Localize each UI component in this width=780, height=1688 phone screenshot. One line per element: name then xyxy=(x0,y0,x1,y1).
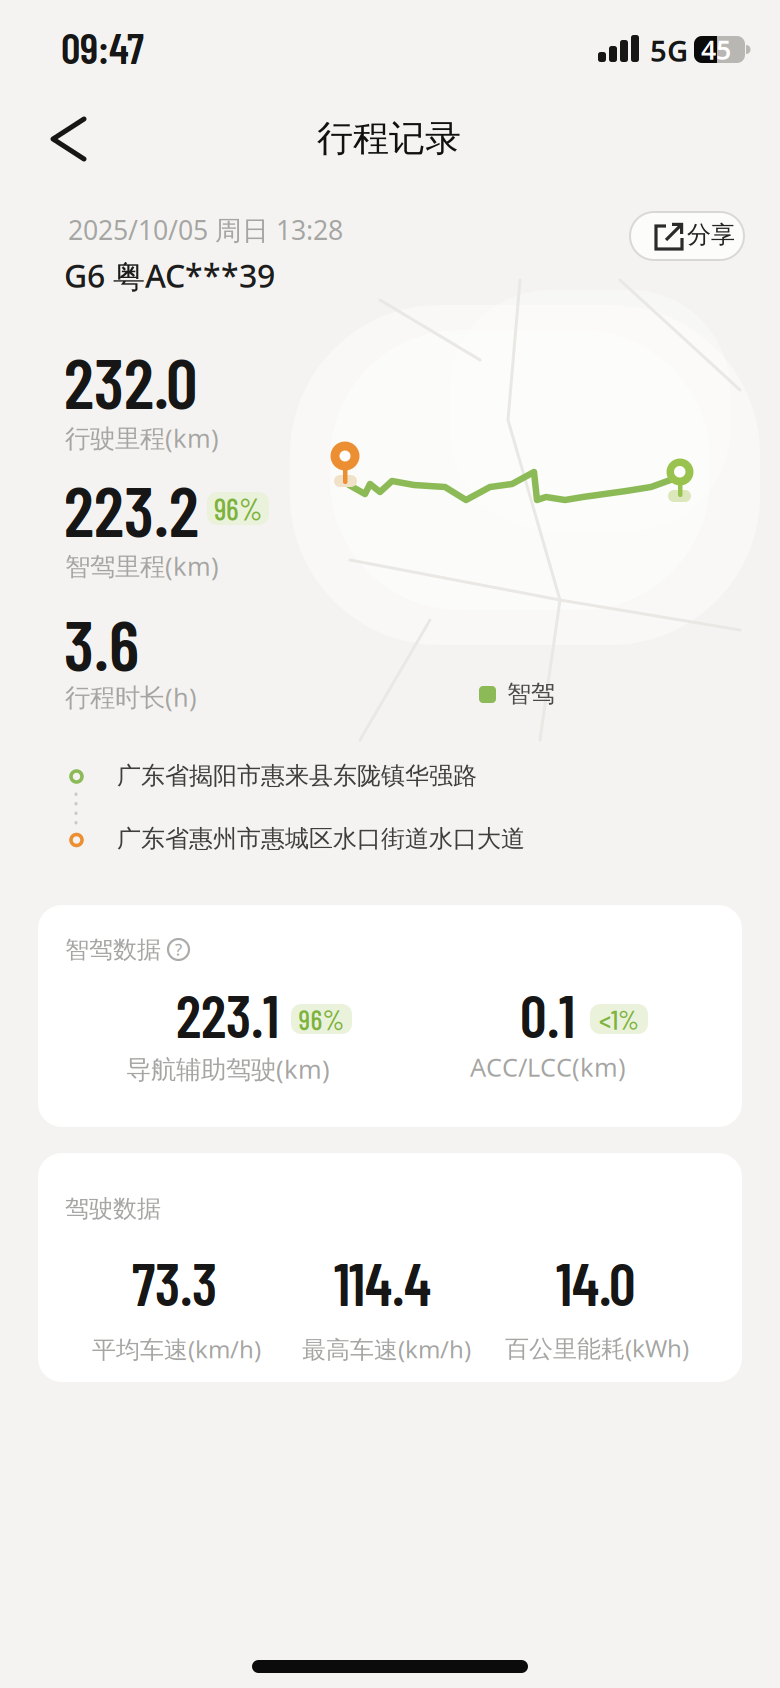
staticText: 智驾 xyxy=(507,679,555,708)
staticText: 百公里能耗(kWh) xyxy=(505,1332,689,1364)
staticText: 广东省惠州市惠城区水口街道水口大道 xyxy=(117,824,525,853)
staticText: 232.0 xyxy=(64,339,198,423)
staticText: 行程记录 xyxy=(317,116,461,161)
staticText: G6 粤AC***39 xyxy=(64,254,275,297)
staticText: 3.6 xyxy=(64,601,139,685)
staticText: ? xyxy=(175,939,182,960)
staticText: 114.4 xyxy=(334,1247,431,1318)
staticText: 行驶里程(km) xyxy=(65,421,219,455)
staticText: 96% xyxy=(214,490,262,526)
staticText: 96% xyxy=(298,1002,344,1036)
staticText: 导航辅助驾驶(km) xyxy=(126,1052,330,1086)
staticText: 0.1 xyxy=(520,979,575,1050)
staticText: 223.1 xyxy=(176,979,279,1050)
staticText: 行程时长(h) xyxy=(65,680,197,714)
staticText: 驾驶数据 xyxy=(65,1194,161,1223)
staticText: 分享 xyxy=(687,220,735,249)
staticText: <1% xyxy=(599,1003,639,1035)
staticText: 09:47 xyxy=(61,21,144,73)
staticText: ACC/LCC(km) xyxy=(470,1050,626,1084)
staticText: 5G xyxy=(650,31,688,70)
staticText: 2025/10/05 周日 13:28 xyxy=(68,212,343,247)
staticText: 223.2 xyxy=(64,467,199,551)
staticText: 最高车速(km/h) xyxy=(302,1333,471,1365)
staticText: 广东省揭阳市惠来县东陇镇华强路 xyxy=(117,761,477,790)
staticText: 智驾数据 xyxy=(65,935,161,964)
staticText: 平均车速(km/h) xyxy=(92,1333,261,1365)
staticText: 73.3 xyxy=(132,1247,217,1318)
staticText: 智驾里程(km) xyxy=(65,549,219,583)
staticText: 14.0 xyxy=(556,1247,636,1318)
staticText: 45 xyxy=(701,32,731,67)
